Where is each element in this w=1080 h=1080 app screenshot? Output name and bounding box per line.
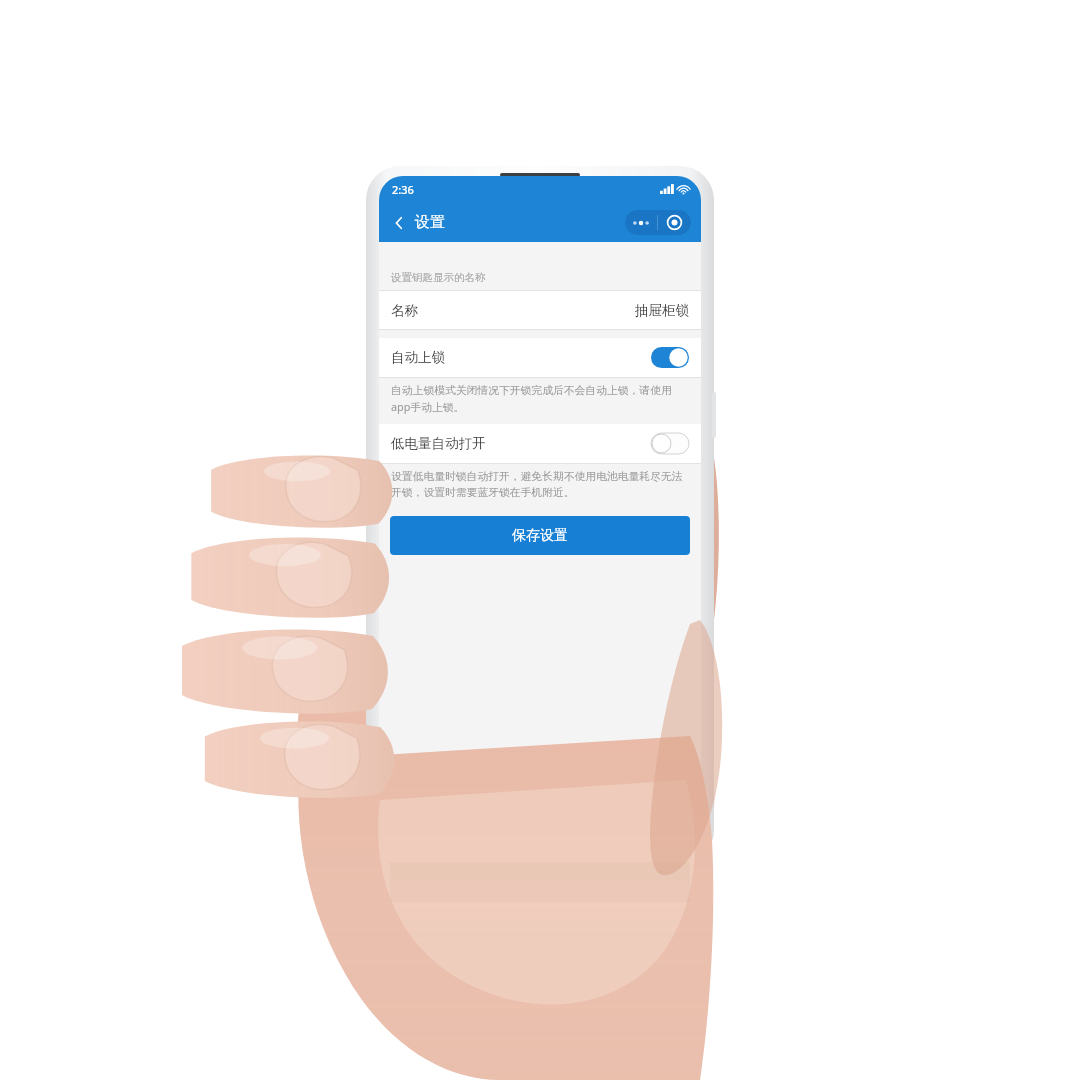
- staticText: 自动上锁模式关闭情况下开锁完成后不会自动上锁，请使用app手动上锁。: [391, 384, 687, 414]
- staticText: 设置钥匙显示的名称: [391, 271, 486, 284]
- other: Back: [391, 215, 407, 231]
- button[interactable]: 名称: [379, 290, 701, 330]
- staticText: 自动上锁: [391, 349, 445, 366]
- staticText: 低电量自动打开: [391, 435, 486, 452]
- button[interactable]: 保存设置: [390, 516, 690, 555]
- staticText: 名称: [391, 302, 418, 319]
- button[interactable]: Back: [387, 209, 449, 236]
- staticText: 保存设置: [512, 527, 568, 545]
- button[interactable]: Recents: [379, 791, 487, 825]
- button[interactable]: Record: [658, 210, 691, 235]
- button[interactable]: Toggle off: [651, 433, 689, 454]
- button[interactable]: More options: [625, 210, 657, 235]
- staticText: 设置: [415, 213, 445, 232]
- button[interactable]: Toggle on: [651, 347, 689, 368]
- staticText: 设置低电量时锁自动打开，避免长期不使用电池电量耗尽无法开锁，设置时需要蓝牙锁在手…: [391, 470, 687, 499]
- button[interactable]: Back: [594, 791, 701, 825]
- button[interactable]: 自动上锁: [379, 338, 701, 377]
- staticText: 2:36: [392, 182, 414, 197]
- staticText: 抽屉柜锁: [635, 302, 689, 319]
- button[interactable]: 低电量自动打开: [379, 424, 701, 463]
